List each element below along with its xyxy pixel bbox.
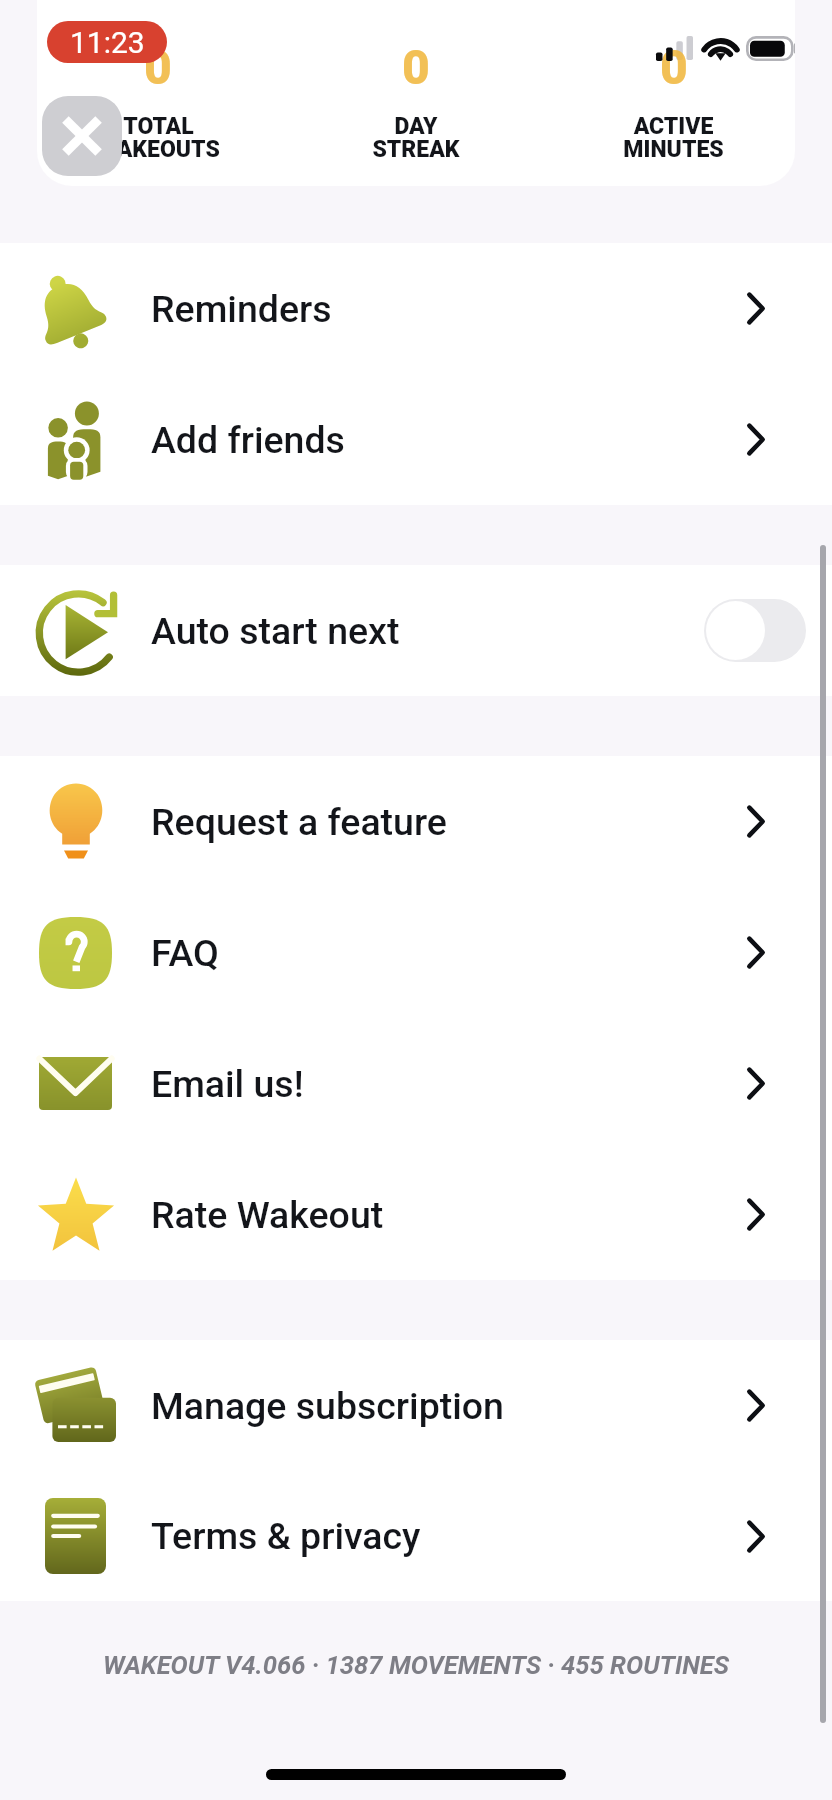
button[interactable]: Manage subscription: [0, 1340, 832, 1471]
staticText: WAKEOUT V4.066 · 1387 MOVEMENTS · 455 RO…: [103, 1650, 729, 1680]
staticText: TOTAL WAKEOUTS: [97, 113, 220, 163]
button[interactable]: Add friends: [0, 374, 832, 505]
staticText: DAY STREAK: [372, 113, 460, 163]
staticText: Reminders: [151, 287, 332, 331]
button[interactable]: Rate Wakeout: [0, 1149, 832, 1280]
staticText: Manage subscription: [151, 1384, 504, 1428]
button[interactable]: Email us!: [0, 1018, 832, 1149]
button[interactable]: Request a feature: [0, 756, 832, 887]
staticText: Rate Wakeout: [151, 1193, 384, 1237]
button[interactable]: Auto start next: [0, 565, 832, 696]
staticText: Request a feature: [151, 800, 447, 844]
staticText: FAQ: [151, 931, 219, 975]
staticText: Auto start next: [151, 609, 400, 653]
staticText: 0: [144, 39, 172, 95]
staticText: Email us!: [151, 1062, 304, 1106]
staticText: 0: [660, 39, 688, 95]
staticText: Terms & privacy: [151, 1514, 421, 1558]
staticText: ACTIVE MINUTES: [623, 113, 724, 163]
button[interactable]: FAQ: [0, 887, 832, 1018]
staticText: 11:23: [70, 25, 145, 60]
staticText: 0: [402, 39, 430, 95]
button[interactable]: Close: [42, 96, 122, 176]
button[interactable]: Reminders: [0, 243, 832, 374]
button[interactable]: Terms & privacy: [0, 1471, 832, 1601]
staticText: Add friends: [151, 418, 345, 462]
